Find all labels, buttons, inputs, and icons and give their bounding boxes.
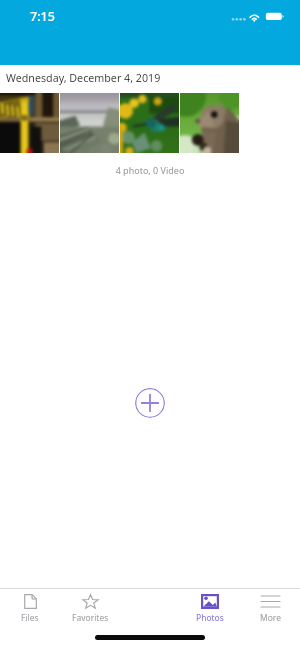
button[interactable]: More <box>240 589 300 627</box>
staticText: Photos <box>196 612 224 624</box>
button[interactable] <box>0 93 59 153</box>
staticText: Files <box>21 612 39 624</box>
staticText: 7:15 <box>30 8 55 25</box>
button[interactable]: Files <box>0 589 60 627</box>
button[interactable]: Favorites <box>60 589 120 627</box>
staticText: Wednesday, December 4, 2019 <box>6 71 161 86</box>
button[interactable]: Add <box>135 388 165 418</box>
button[interactable] <box>60 93 119 153</box>
staticText: 4 photo, 0 Video <box>0 164 300 176</box>
staticText: Favorites <box>72 612 109 624</box>
button[interactable] <box>120 93 179 153</box>
staticText: More <box>260 612 281 624</box>
button[interactable]: Photos <box>180 589 240 627</box>
button[interactable] <box>180 93 239 153</box>
